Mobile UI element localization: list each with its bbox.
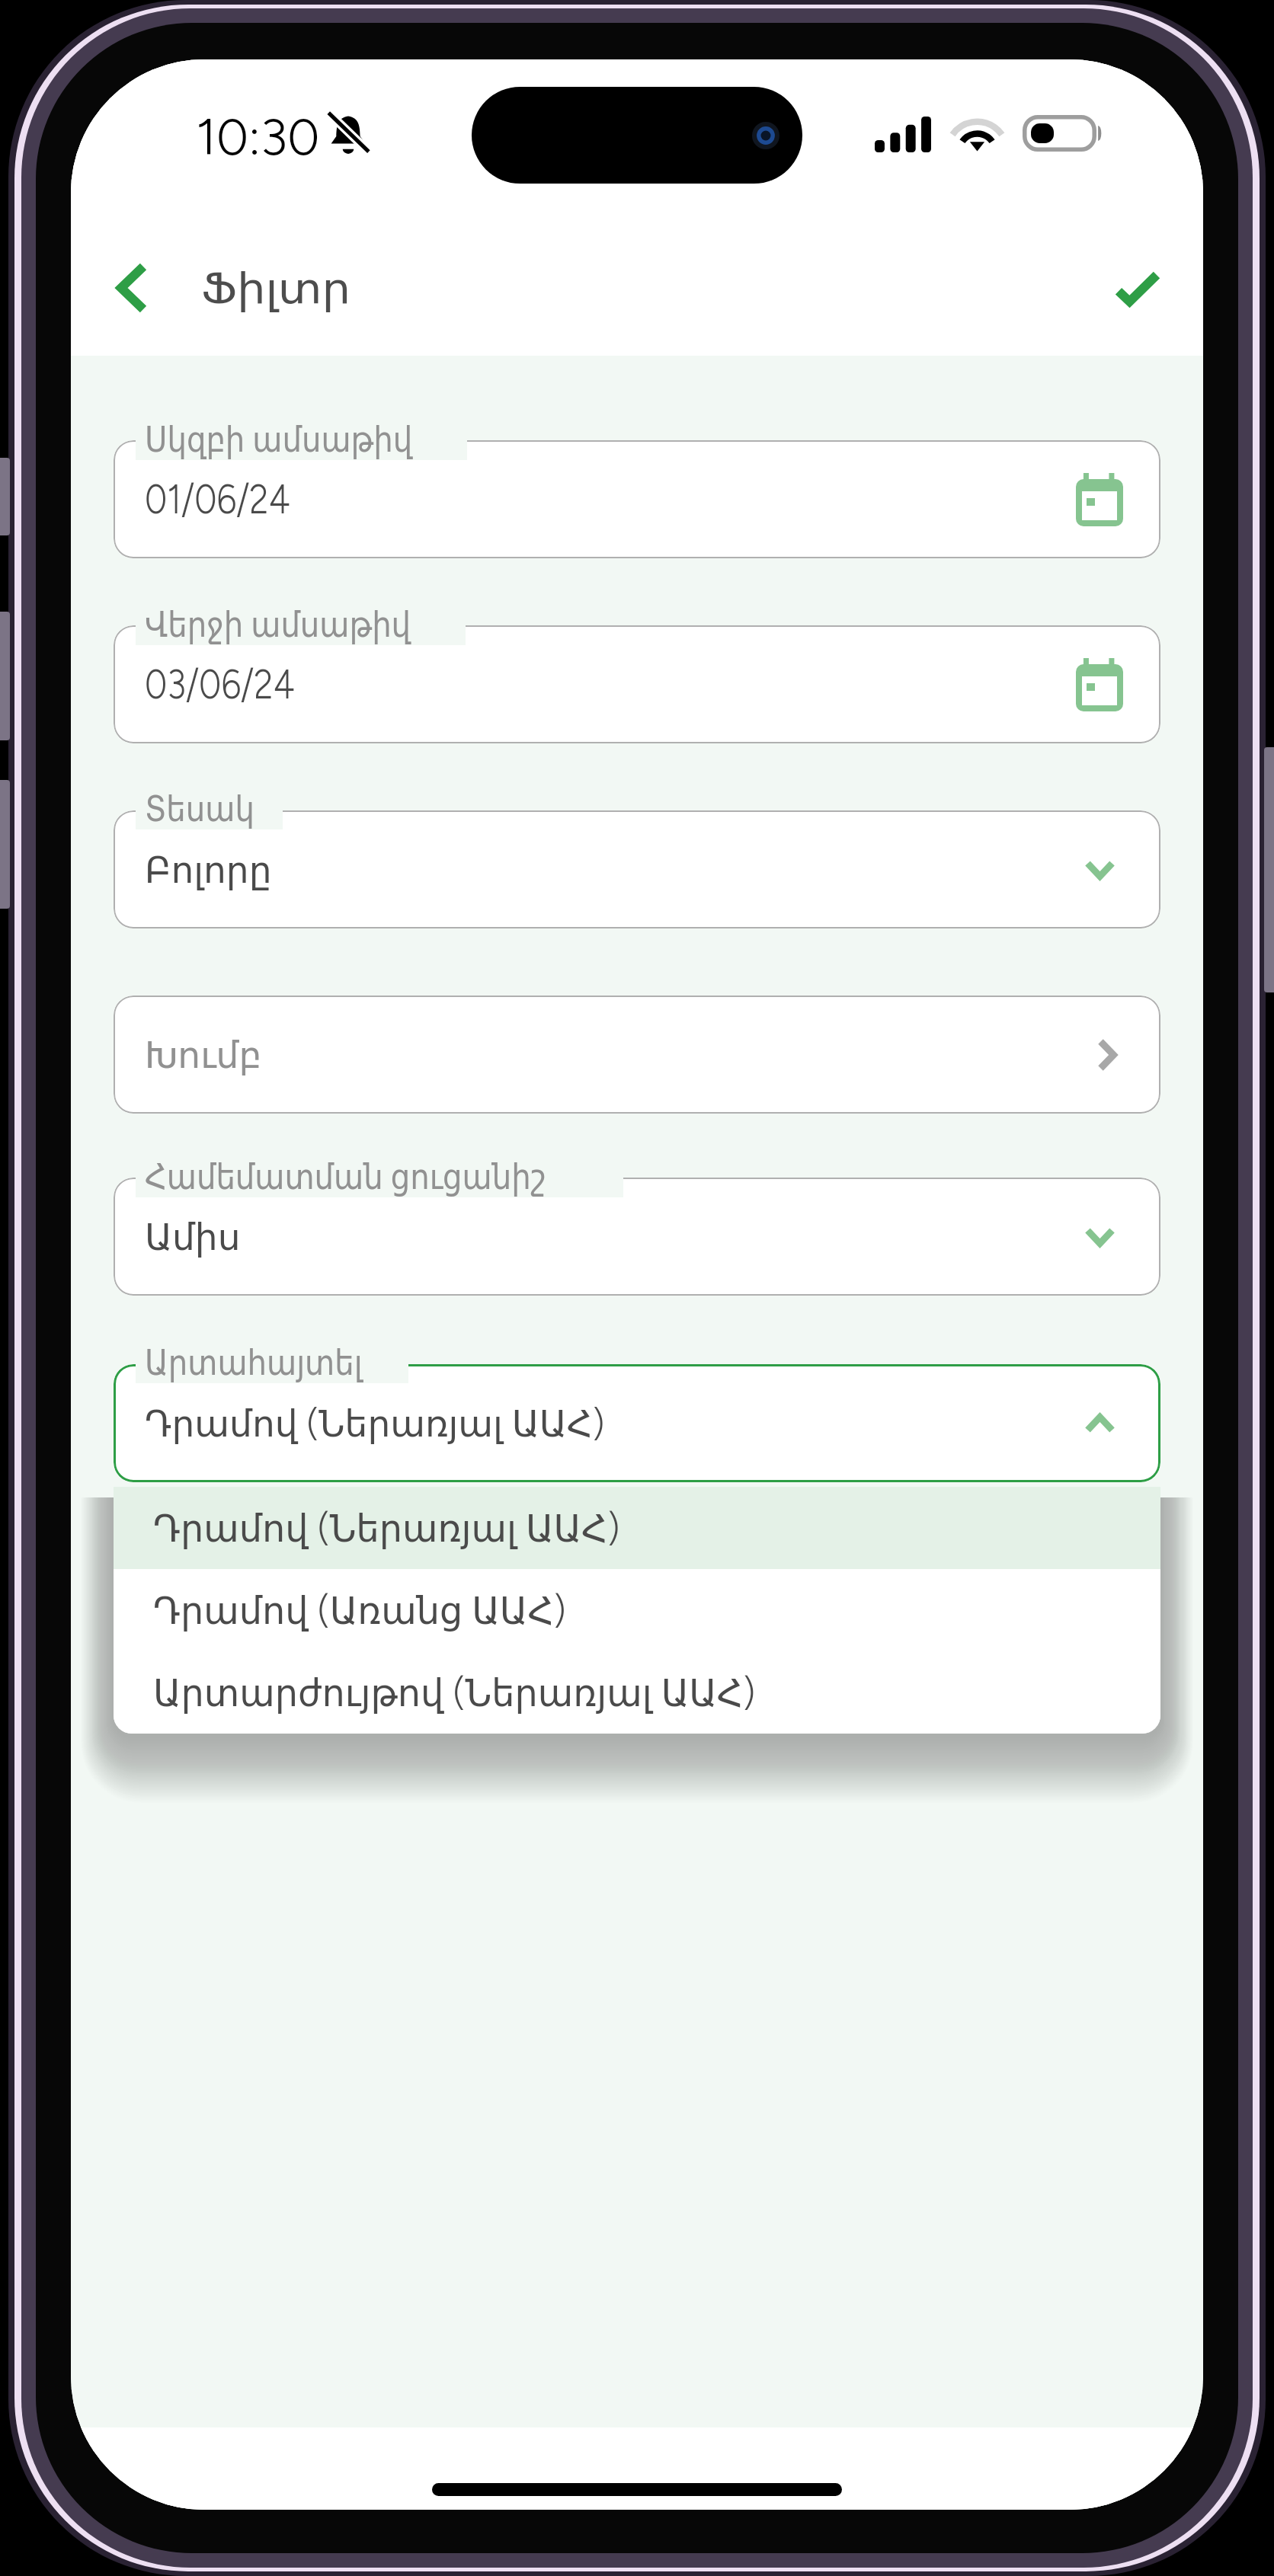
button[interactable]: 03/06/24: [114, 625, 1160, 743]
button[interactable]: Ամիս: [114, 1178, 1160, 1296]
button[interactable]: Դրամով (Առանց ԱԱՀ): [114, 1569, 1160, 1651]
staticText: 03/06/24: [145, 660, 295, 709]
staticText: Դրամով (Առանց ԱԱՀ): [153, 1587, 566, 1633]
button[interactable]: Դրամով (Ներառյալ ԱԱՀ): [114, 1487, 1160, 1569]
button[interactable]: Խումբ: [114, 996, 1160, 1114]
staticText: Սկզբի ամսաթիվ: [145, 417, 413, 460]
staticText: Խումբ: [145, 1034, 262, 1076]
staticText: Բոլորը: [145, 849, 272, 891]
staticText: Դրամով (Ներառյալ ԱԱՀ): [145, 1401, 605, 1446]
button[interactable]: Դրամով (Ներառյալ ԱԱՀ): [114, 1364, 1160, 1482]
button[interactable]: Apply filter: [1092, 245, 1183, 331]
staticText: 10:30: [196, 107, 320, 167]
staticText: Դրամով (Ներառյալ ԱԱՀ): [153, 1505, 620, 1551]
button[interactable]: 01/06/24: [114, 440, 1160, 558]
staticText: Համեմատման ցուցանիշ: [145, 1155, 546, 1197]
staticText: 01/06/24: [145, 475, 291, 524]
staticText: Վերջի ամսաթիվ: [145, 602, 411, 645]
staticText: Տեսակ: [145, 788, 255, 829]
staticText: Ամիս: [145, 1216, 241, 1258]
staticText: Ֆիլտր: [201, 264, 351, 313]
button[interactable]: Արտարժույթով (Ներառյալ ԱԱՀ): [114, 1651, 1160, 1734]
staticText: Արտահայտել: [145, 1341, 362, 1383]
button[interactable]: Բոլորը: [114, 810, 1160, 928]
staticText: Արտարժույթով (Ներառյալ ԱԱՀ): [153, 1670, 756, 1715]
button[interactable]: Back: [84, 245, 180, 331]
